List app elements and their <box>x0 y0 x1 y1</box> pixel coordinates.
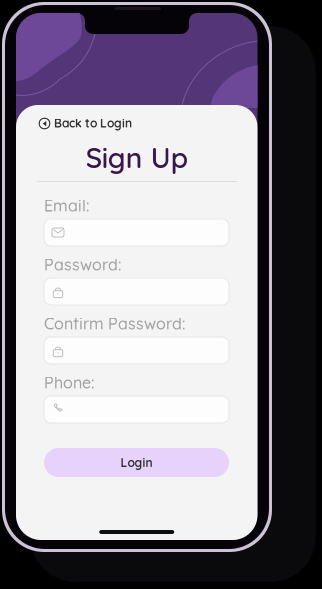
staticText: Phone: <box>44 372 94 392</box>
staticText: Back to Login <box>54 115 132 130</box>
staticText: Password: <box>44 254 121 274</box>
staticText: Sign Up <box>86 140 188 175</box>
staticText: Email: <box>44 195 89 215</box>
staticText: Confirm Password: <box>44 313 185 333</box>
staticText: Login <box>120 455 152 470</box>
button[interactable]: Back to Login <box>36 113 135 134</box>
button[interactable]: Login <box>44 448 229 477</box>
